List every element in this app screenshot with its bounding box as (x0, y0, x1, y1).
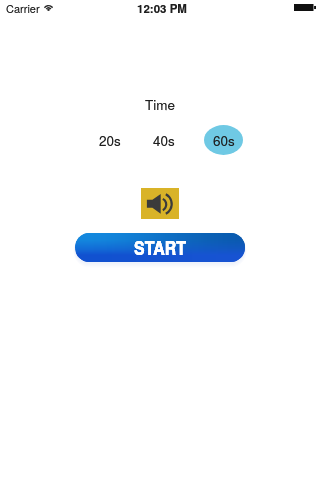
staticText: Carrier (6, 0, 40, 16)
button[interactable]: Sound (141, 188, 179, 219)
staticText: START (134, 233, 187, 261)
staticText: 40s (153, 131, 175, 150)
staticText: START (134, 233, 187, 261)
button[interactable]: 60s (204, 125, 243, 155)
other: Battery full (294, 4, 316, 11)
button[interactable]: 20s (90, 125, 129, 155)
staticText: Carrier (6, 0, 40, 16)
staticText: 20s (99, 131, 121, 150)
button[interactable]: START (75, 233, 245, 262)
staticText: 20s (99, 131, 121, 150)
button[interactable]: 40s (144, 125, 183, 155)
staticText: Time (0, 95, 320, 114)
staticText: 12:03 PM (2, 0, 320, 16)
staticText: 12:03 PM (2, 0, 320, 16)
staticText: 60s (213, 131, 235, 150)
staticText: Time (0, 95, 320, 114)
staticText: 40s (153, 131, 175, 150)
staticText: 60s (213, 131, 235, 150)
other: Wi-Fi (43, 3, 54, 11)
